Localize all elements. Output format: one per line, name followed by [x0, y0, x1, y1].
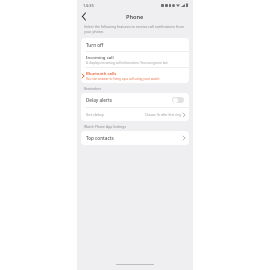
staticText: Set delay — [86, 112, 145, 118]
staticText: 14:35 — [83, 2, 94, 8]
button[interactable]: Set delay — [81, 108, 189, 121]
staticText: Watch Phone App Settings — [84, 124, 127, 129]
button[interactable]: Turn off — [81, 38, 189, 51]
staticText: Select the following features to receive… — [84, 24, 186, 34]
staticText: Delay alerts — [86, 97, 172, 103]
staticText: Phone — [126, 13, 144, 21]
button[interactable]: Back — [77, 10, 90, 23]
staticText: It displays incoming call information. Y… — [86, 61, 168, 65]
staticText: Incoming call — [86, 54, 114, 60]
staticText: Bluetooth calls — [86, 70, 117, 76]
staticText: Turn off — [86, 42, 104, 48]
button[interactable]: Incoming call — [81, 52, 189, 67]
button[interactable]: Bluetooth calls — [81, 68, 189, 83]
button[interactable]: Delay alerts — [81, 93, 189, 107]
button[interactable]: Top contacts — [81, 131, 189, 145]
staticText: Choose 3s after first ring — [145, 113, 181, 117]
staticText: Reminders — [84, 86, 102, 91]
staticText: Top contacts — [86, 135, 183, 141]
staticText: You can answer or hang up a call using y… — [86, 77, 160, 81]
button[interactable]: Delay alerts — [172, 97, 184, 103]
